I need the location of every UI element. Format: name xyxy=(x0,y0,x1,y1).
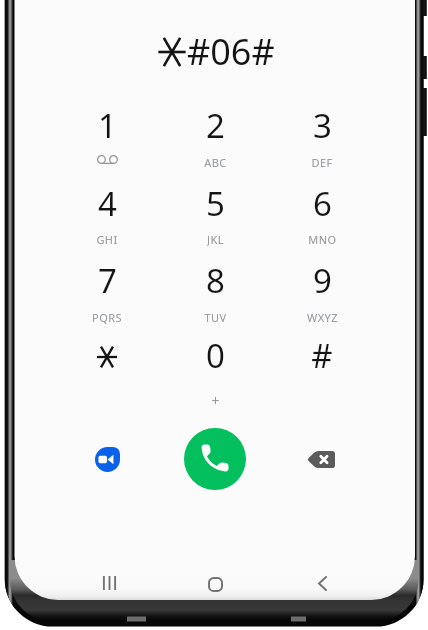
staticText: 6 xyxy=(313,181,332,226)
staticText: 5 xyxy=(206,181,225,226)
button[interactable]: Home xyxy=(183,562,247,606)
button[interactable]: 3 xyxy=(276,103,368,179)
button[interactable]: Back xyxy=(290,561,354,605)
staticText: DEF xyxy=(311,155,333,169)
button[interactable]: Video call xyxy=(78,430,136,488)
staticText: 1 xyxy=(98,103,117,148)
staticText: MNO xyxy=(308,232,337,246)
button[interactable]: # xyxy=(276,333,368,409)
staticText: + xyxy=(211,391,220,405)
staticText: PQRS xyxy=(92,310,122,324)
button[interactable]: 9 xyxy=(276,258,368,334)
staticText: 8 xyxy=(206,258,225,303)
staticText: 2 xyxy=(206,103,225,148)
button[interactable]: 0 xyxy=(169,333,261,409)
button[interactable]: 7 xyxy=(61,258,153,334)
button[interactable] xyxy=(61,333,153,409)
staticText: 7 xyxy=(98,258,117,303)
button[interactable]: Call xyxy=(184,428,246,490)
staticText: ABC xyxy=(204,155,227,169)
staticText: WXYZ xyxy=(307,310,338,324)
button[interactable]: 4 xyxy=(61,181,153,257)
staticText: 0 xyxy=(206,333,225,378)
staticText: GHI xyxy=(96,232,118,246)
button[interactable]: Recents xyxy=(77,561,141,605)
button[interactable]: 2 xyxy=(169,103,261,179)
button[interactable]: 6 xyxy=(276,181,368,257)
staticText: 4 xyxy=(98,181,117,226)
staticText: 3 xyxy=(313,103,332,148)
button[interactable]: Backspace xyxy=(292,430,350,488)
button[interactable]: 8 xyxy=(169,258,261,334)
staticText: #06# xyxy=(187,27,275,76)
button[interactable]: 1 xyxy=(61,103,153,179)
staticText: JKL xyxy=(207,232,224,246)
button[interactable]: 5 xyxy=(169,181,261,257)
staticText: # xyxy=(311,333,333,378)
staticText: TUV xyxy=(204,310,227,324)
staticText: 9 xyxy=(313,258,332,303)
